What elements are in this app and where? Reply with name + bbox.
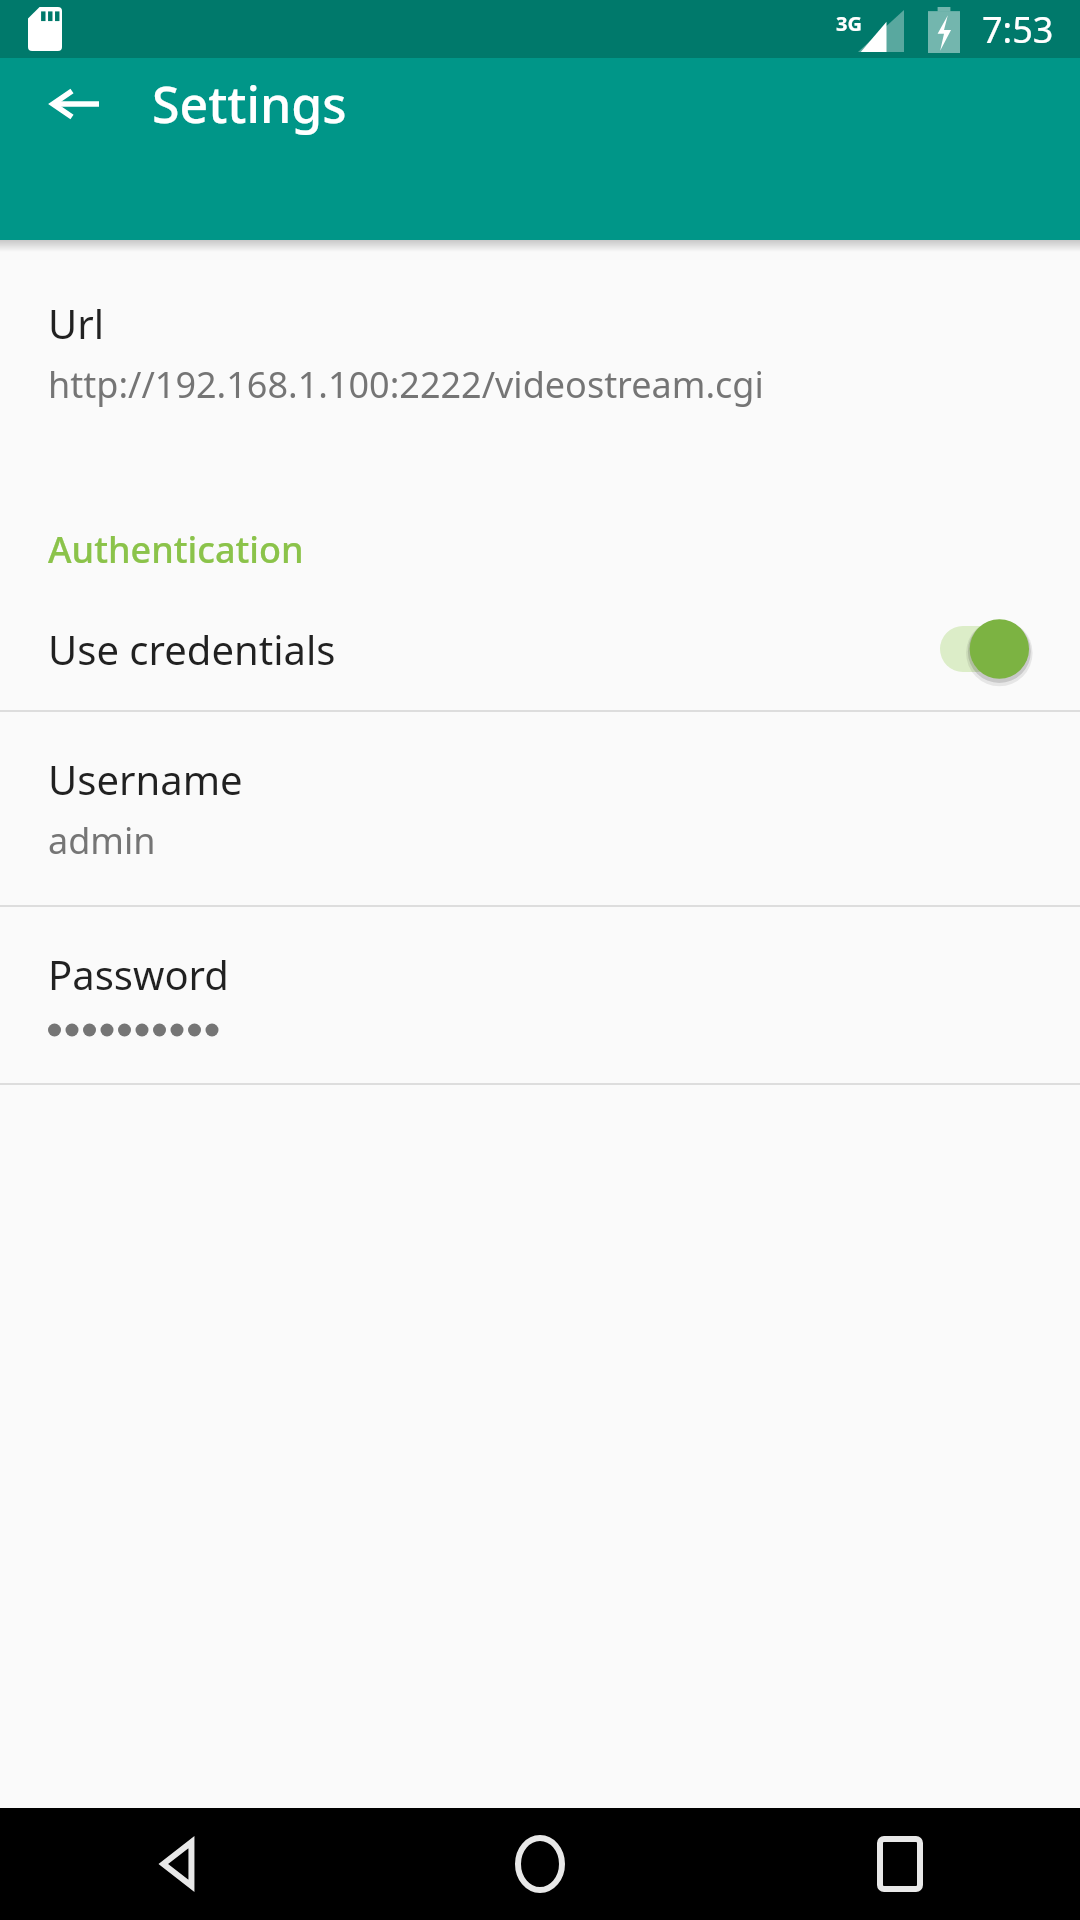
staticText: 7:53	[982, 5, 1054, 54]
staticText: Url	[48, 296, 105, 350]
staticText: Password	[48, 947, 229, 1001]
staticText: Authentication	[48, 525, 304, 574]
staticText: Username	[48, 752, 243, 806]
button[interactable]: Use credentials	[0, 588, 1080, 710]
staticText: Settings	[152, 70, 347, 138]
button[interactable]: Username	[0, 712, 1080, 905]
button[interactable]: Back	[0, 1808, 360, 1920]
button[interactable]: Back	[30, 58, 122, 150]
button[interactable]: Password	[0, 907, 1080, 1083]
staticText: 3G	[836, 10, 862, 37]
staticText: Use credentials	[48, 622, 936, 676]
button[interactable]: Home	[360, 1808, 720, 1920]
button[interactable]: Url	[0, 252, 1080, 453]
staticText: http://192.168.1.100:2222/videostream.cg…	[48, 360, 764, 409]
staticText: admin	[48, 816, 156, 865]
button[interactable]: Recent apps	[720, 1808, 1080, 1920]
button[interactable]	[936, 616, 1032, 682]
